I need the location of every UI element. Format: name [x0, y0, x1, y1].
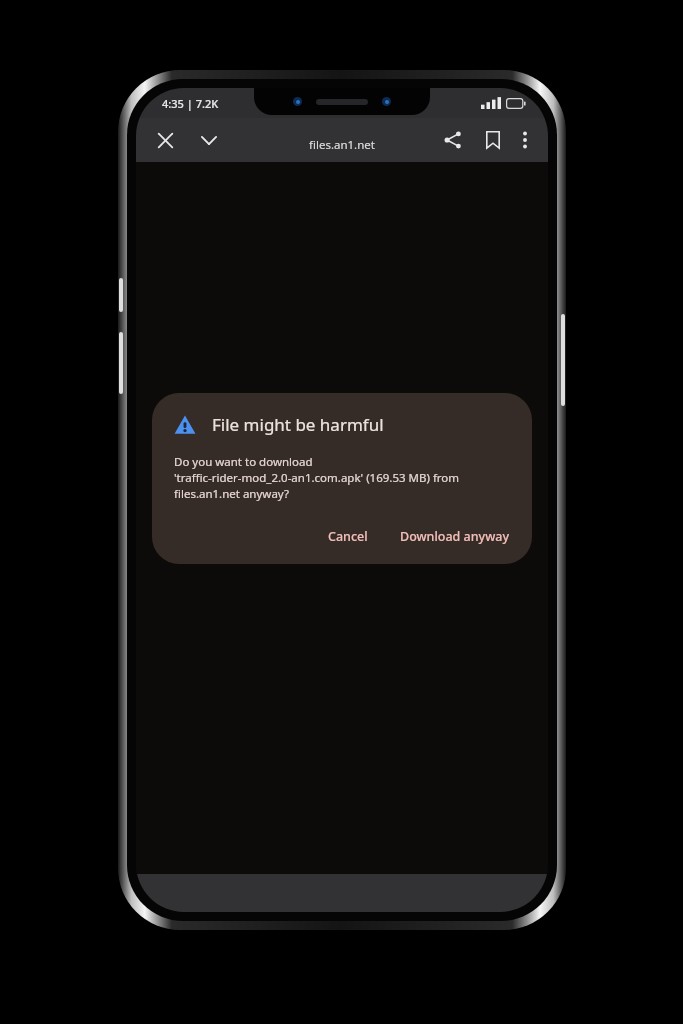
staticText: Do you want to download: [174, 454, 313, 470]
staticText: Download anyway: [400, 528, 510, 545]
button[interactable]: Bookmark: [476, 120, 510, 160]
staticText: File might be harmful: [212, 413, 384, 436]
staticText: 4:35 | 7.2K: [162, 96, 219, 111]
button[interactable]: Download anyway: [388, 520, 522, 553]
staticText: files.an1.net: [309, 137, 375, 153]
staticText: Cancel: [328, 528, 368, 545]
button[interactable]: Cancel: [316, 520, 380, 553]
staticText: 'traffic-rider-mod_2.0-an1.com.apk' (169…: [174, 470, 460, 486]
button[interactable]: Collapse: [192, 120, 226, 160]
staticText: files.an1.net anyway?: [174, 486, 289, 502]
button[interactable]: Share: [436, 120, 470, 160]
button[interactable]: More options: [512, 120, 538, 160]
button[interactable]: Close: [148, 120, 182, 160]
